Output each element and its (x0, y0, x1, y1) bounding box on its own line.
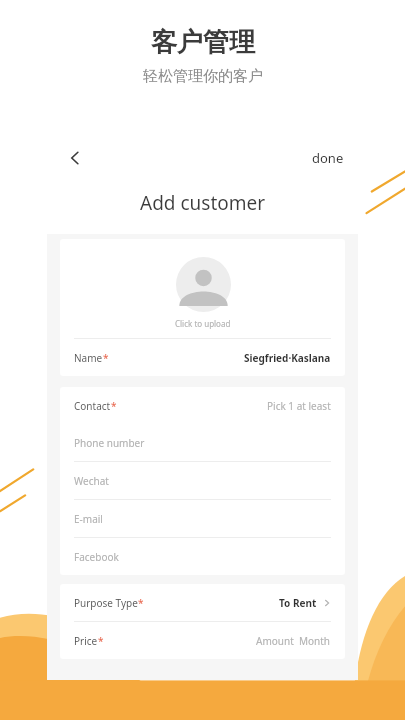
staticText: Click to upload (175, 318, 231, 329)
staticText: Name (74, 351, 103, 365)
staticText: Price (74, 634, 98, 648)
staticText: Amount Month (256, 634, 331, 648)
staticText: E-mail (74, 512, 103, 526)
staticText: * (103, 351, 109, 365)
button[interactable]: Purpose Type (60, 584, 345, 621)
staticText: done (312, 149, 344, 167)
button[interactable]: done (298, 143, 358, 173)
staticText: 轻松管理你的客户 (143, 67, 263, 86)
staticText: * (138, 596, 144, 610)
staticText: Add customer (140, 190, 266, 216)
staticText: Wechat (74, 474, 109, 488)
staticText: Pick 1 at least (267, 399, 331, 413)
button[interactable]: Phone number (60, 424, 345, 461)
button[interactable]: Facebook (60, 538, 345, 575)
button[interactable]: E-mail (60, 500, 345, 537)
button[interactable]: Wechat (60, 462, 345, 499)
button[interactable]: Contact (60, 387, 345, 424)
staticText: Contact (74, 399, 111, 413)
staticText: Phone number (74, 436, 145, 450)
button[interactable]: Back (61, 144, 89, 172)
staticText: To Rent (279, 596, 317, 610)
button[interactable]: Click to upload avatar (60, 257, 345, 329)
staticText: Siegfried·Kaslana (244, 351, 331, 365)
button[interactable]: Price (60, 622, 345, 659)
staticText: Facebook (74, 550, 119, 564)
staticText: 客户管理 (151, 26, 255, 59)
staticText: * (111, 399, 117, 413)
staticText: Purpose Type (74, 596, 138, 610)
button[interactable]: Name (60, 339, 345, 376)
staticText: * (98, 634, 104, 648)
